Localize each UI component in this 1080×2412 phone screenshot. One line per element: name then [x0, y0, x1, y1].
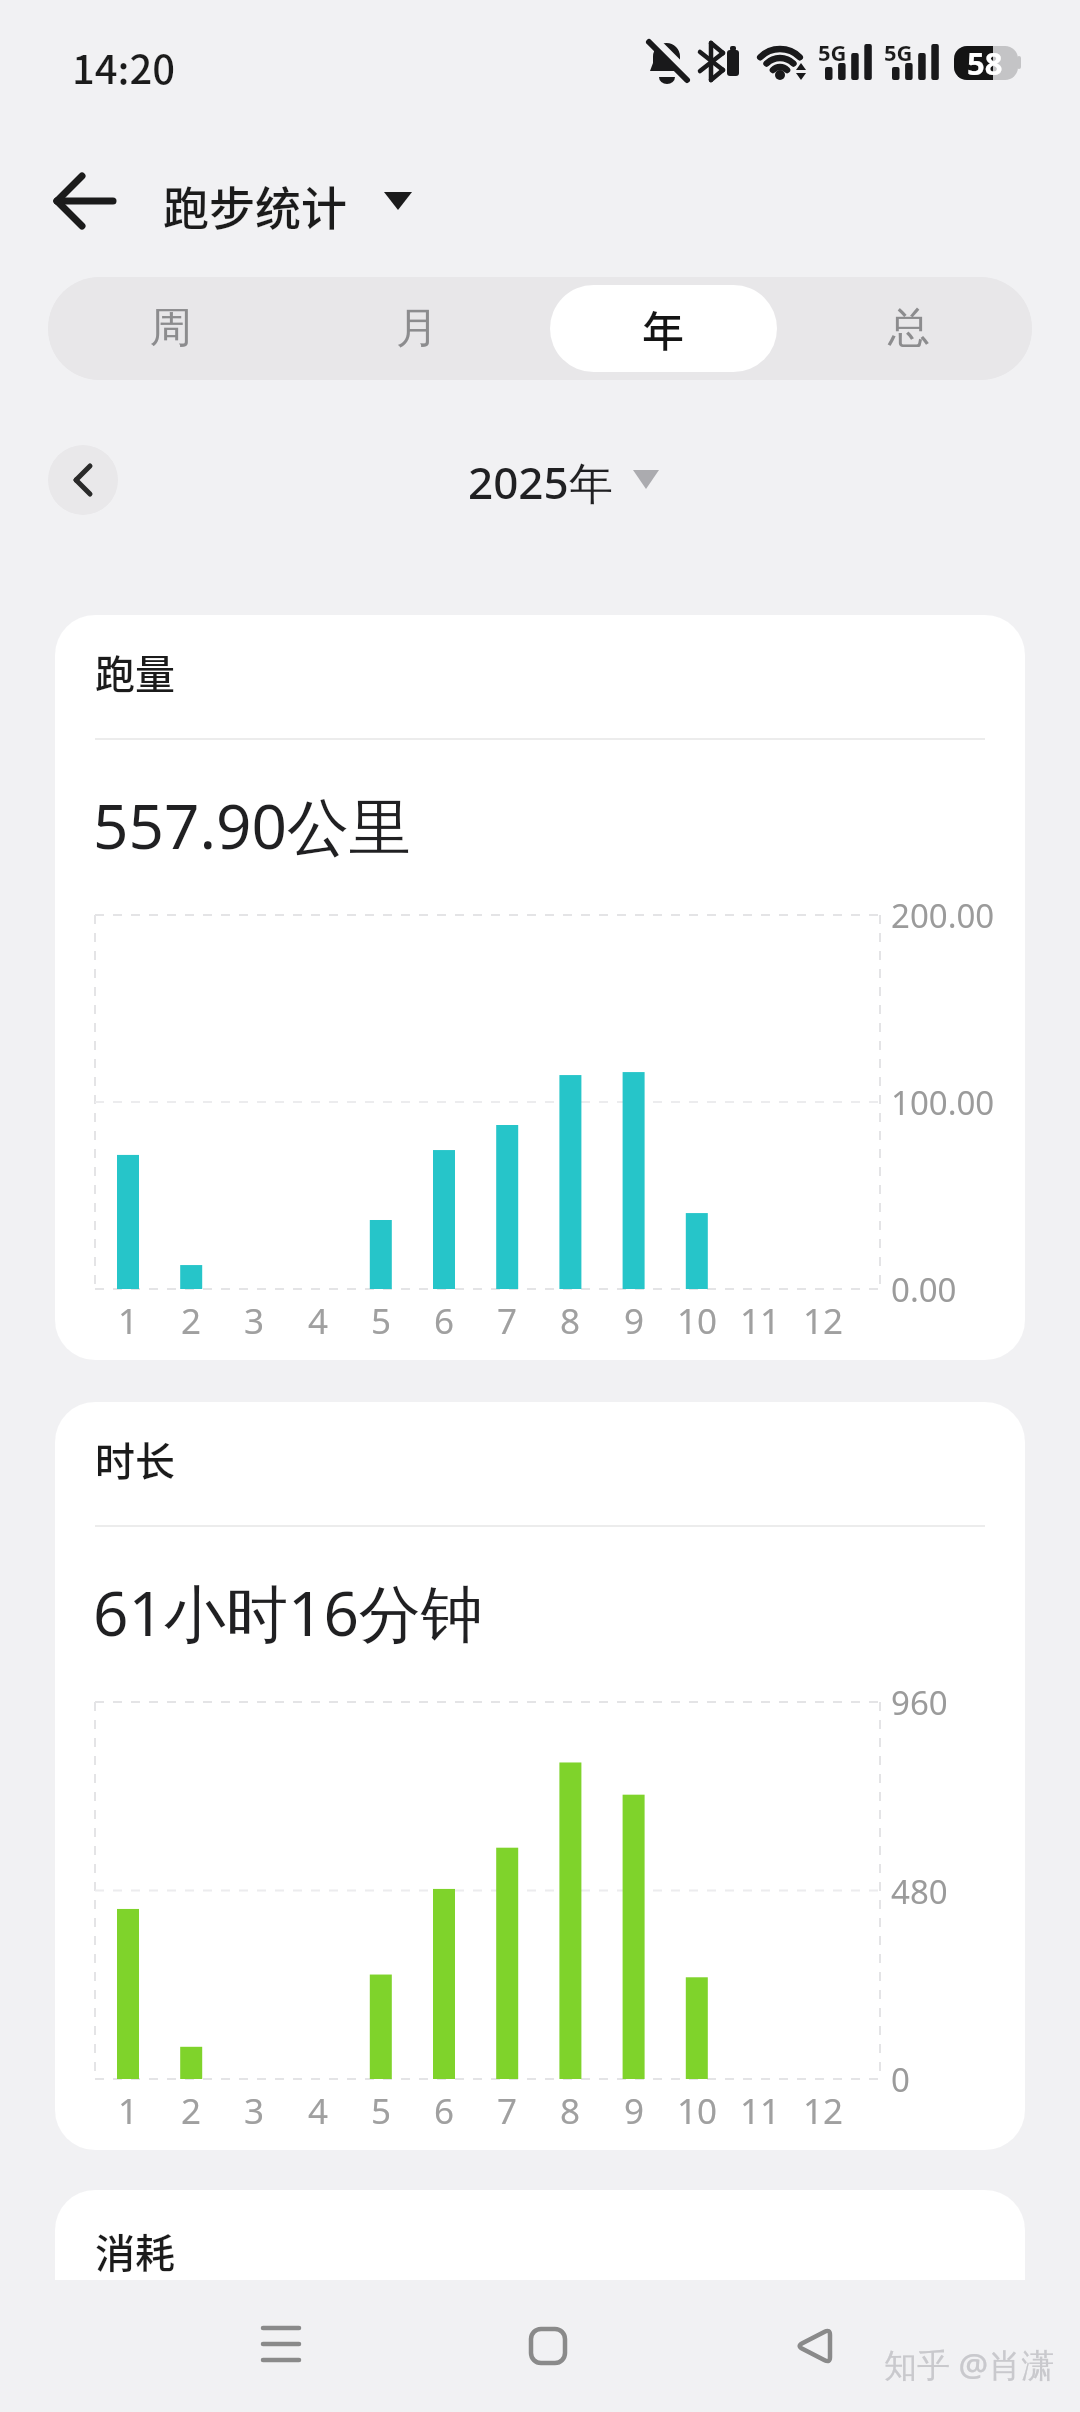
button[interactable] [460, 442, 670, 518]
staticText: 12 [803, 2087, 844, 2131]
staticText: 5G [818, 37, 847, 67]
button[interactable] [48, 445, 118, 515]
button[interactable]: 时长 [55, 1402, 1025, 2150]
button[interactable]: 总 [786, 277, 1032, 380]
button[interactable] [512, 2310, 584, 2382]
staticText: 消耗 [95, 2222, 175, 2280]
staticText: 6 [434, 1297, 455, 1341]
staticText: 12 [803, 1297, 844, 1341]
staticText: 4 [308, 2087, 329, 2131]
button[interactable]: 年 [540, 277, 786, 380]
staticText: 100.00 [891, 1080, 995, 1124]
button[interactable]: 周 [48, 277, 294, 380]
staticText: 知乎 @肖潇 [884, 2342, 1055, 2387]
staticText: 7 [497, 1297, 518, 1341]
staticText: 0.00 [891, 1267, 957, 1311]
staticText: 5 [371, 1297, 392, 1341]
staticText: 时长 [95, 1430, 175, 1488]
staticText: 3 [244, 1297, 265, 1341]
staticText: 960 [891, 1680, 948, 1724]
button[interactable] [245, 2310, 317, 2382]
staticText: 3 [244, 2087, 265, 2131]
staticText: 2 [181, 1297, 202, 1341]
button[interactable]: 跑量 [55, 615, 1025, 1360]
button[interactable] [40, 160, 130, 244]
button[interactable] [778, 2310, 850, 2382]
staticText: 10 [677, 1297, 718, 1341]
staticText: 10 [677, 2087, 718, 2131]
staticText: 8 [560, 1297, 581, 1341]
staticText: 周 [150, 302, 192, 355]
staticText: 5 [371, 2087, 392, 2131]
staticText: 14:20 [72, 38, 176, 96]
staticText: 1 [118, 2087, 139, 2131]
staticText: 200.00 [891, 893, 995, 937]
staticText: 4 [308, 1297, 329, 1341]
staticText: 11 [740, 2087, 781, 2131]
staticText: 9 [624, 2087, 645, 2131]
staticText: 9 [624, 1297, 645, 1341]
staticText: 跑量 [95, 643, 175, 701]
staticText: 557.90公里 [93, 783, 411, 868]
staticText: 总 [888, 302, 930, 355]
staticText: 0 [891, 2057, 910, 2101]
staticText: 5G [884, 37, 913, 67]
staticText: 跑步统计 [163, 172, 347, 239]
staticText: 年 [642, 298, 685, 359]
staticText: 58 [967, 42, 1003, 84]
staticText: 8 [560, 2087, 581, 2131]
staticText: 2025年 [468, 452, 613, 512]
button[interactable]: 月 [294, 277, 540, 380]
staticText: 6 [434, 2087, 455, 2131]
staticText: 480 [891, 1869, 948, 1913]
staticText: 61小时16分钟 [93, 1570, 483, 1655]
staticText: 月 [396, 302, 438, 355]
button[interactable]: 消耗 [55, 2190, 1025, 2350]
staticText: 1 [118, 1297, 139, 1341]
staticText: 7 [497, 2087, 518, 2131]
staticText: 11 [740, 1297, 781, 1341]
staticText: 2 [181, 2087, 202, 2131]
